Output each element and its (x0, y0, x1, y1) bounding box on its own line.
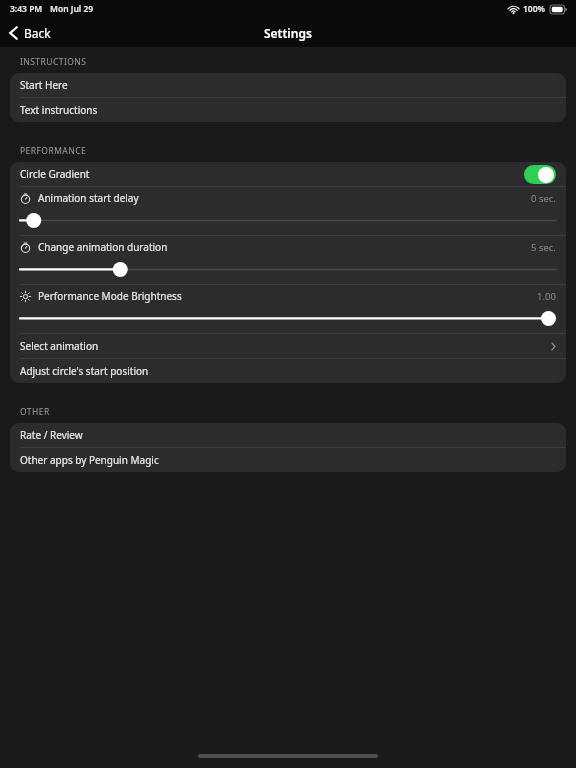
button[interactable]: Select animation (10, 334, 566, 358)
button[interactable]: Timer (10, 236, 566, 284)
button[interactable]: Text instructions (10, 98, 566, 122)
button[interactable]: Timer (10, 187, 566, 235)
button[interactable]: Other apps by Penguin Magic (10, 448, 566, 472)
staticText: PERFORMANCE (20, 145, 87, 157)
staticText: Performance Mode Brightness (38, 289, 182, 303)
staticText: Mon Jul 29 (50, 3, 94, 15)
staticText: Other apps by Penguin Magic (20, 453, 159, 467)
button[interactable]: Circle Gradient switch, on (524, 165, 556, 184)
staticText: 3:43 PM (10, 3, 43, 15)
staticText: 1.00 (537, 290, 556, 303)
staticText: 0 sec. (531, 192, 556, 205)
other: Timer (20, 242, 31, 253)
staticText: Back (24, 25, 51, 41)
staticText: 100% (523, 3, 546, 15)
staticText: Settings (264, 25, 312, 41)
button[interactable]: Back (0, 21, 61, 45)
staticText: Text instructions (20, 103, 98, 117)
other: Timer (20, 193, 31, 204)
staticText: Start Here (20, 78, 68, 92)
staticText: Circle Gradient (20, 167, 90, 181)
other: Brightness (20, 291, 31, 302)
staticText: OTHER (20, 406, 50, 418)
button[interactable]: Brightness (10, 285, 566, 333)
staticText: 5 sec. (531, 241, 556, 254)
button[interactable]: Rate / Review (10, 423, 566, 447)
staticText: Rate / Review (20, 428, 83, 442)
button[interactable]: Circle Gradient (10, 162, 566, 186)
staticText: Change animation duration (38, 240, 168, 254)
staticText: Animation start delay (38, 191, 139, 205)
staticText: INSTRUCTIONS (20, 56, 87, 68)
staticText: Adjust circle's start position (20, 364, 149, 378)
staticText: Select animation (20, 339, 99, 353)
button[interactable]: Adjust circle's start position (10, 359, 566, 383)
button[interactable]: Start Here (10, 73, 566, 97)
